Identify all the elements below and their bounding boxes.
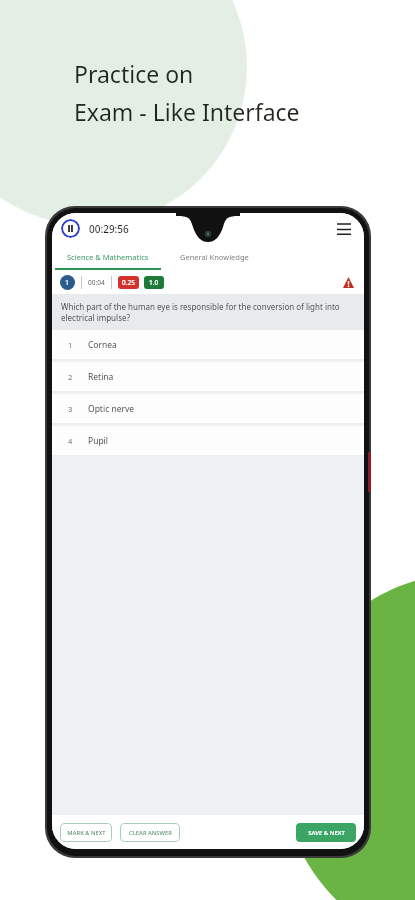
staticText: 1.0 xyxy=(149,278,159,287)
button[interactable]: 4 xyxy=(52,426,364,455)
button[interactable]: General Knowledge xyxy=(164,244,264,270)
button[interactable]: 3 xyxy=(52,394,364,423)
button[interactable]: SAVE & NEXT xyxy=(296,823,356,842)
staticText: Which part of the human eye is responsib… xyxy=(61,301,355,323)
staticText: Practice on xyxy=(74,58,194,89)
staticText: General Knowledge xyxy=(180,252,249,262)
button[interactable]: Science & Mathematics xyxy=(52,244,164,270)
staticText: 1 xyxy=(68,340,73,350)
staticText: MARK & NEXT xyxy=(67,829,106,837)
staticText: 0.25 xyxy=(122,278,135,287)
staticText: 2 xyxy=(68,372,73,382)
button[interactable]: 1 xyxy=(52,330,364,359)
staticText: Retina xyxy=(88,371,114,383)
staticText: SAVE & NEXT xyxy=(308,829,345,837)
staticText: Science & Mathematics xyxy=(67,252,149,262)
staticText: Exam - Like Interface xyxy=(74,96,300,127)
staticText: 1 xyxy=(65,278,70,288)
button[interactable]: CLEAR ANSWER xyxy=(120,823,180,842)
staticText: 4 xyxy=(68,436,73,446)
staticText: Pupil xyxy=(88,435,109,447)
button[interactable]: Pause xyxy=(61,219,80,238)
staticText: 00:29:56 xyxy=(89,222,129,236)
staticText: 3 xyxy=(68,404,73,414)
button[interactable]: MARK & NEXT xyxy=(60,823,112,842)
staticText: Optic nerve xyxy=(88,403,135,415)
staticText: CLEAR ANSWER xyxy=(129,829,172,837)
button[interactable]: Menu xyxy=(333,218,355,240)
button[interactable]: Report question xyxy=(340,274,356,290)
button[interactable]: 2 xyxy=(52,362,364,391)
staticText: 00:04 xyxy=(88,278,105,287)
staticText: Cornea xyxy=(88,339,117,351)
